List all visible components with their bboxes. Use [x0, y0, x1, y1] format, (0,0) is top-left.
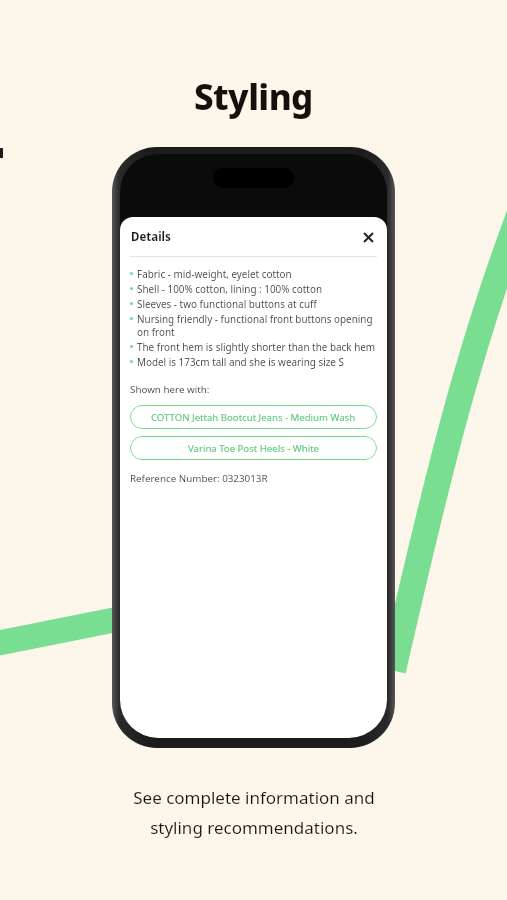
button[interactable]: Close [357, 226, 379, 248]
staticText: Model is 173cm tall and she is wearing s… [137, 355, 344, 368]
staticText: The front hem is slightly shorter than t… [137, 340, 376, 353]
staticText: Reference Number: 0323013R [130, 472, 268, 485]
staticText: styling recommendations. [150, 816, 358, 839]
staticText: Nursing friendly - functional front butt… [137, 312, 377, 338]
staticText: Shown here with: [130, 383, 210, 396]
staticText: Sleeves - two functional buttons at cuff [137, 297, 317, 310]
staticText: COTTON Jettah Bootcut Jeans - Medium Was… [151, 411, 356, 424]
button[interactable]: COTTON Jettah Bootcut Jeans - Medium Was… [130, 405, 377, 429]
staticText: Details [131, 229, 171, 245]
staticText: Fabric - mid-weight, eyelet cotton [137, 267, 292, 280]
staticText: See complete information and [133, 786, 375, 809]
staticText: Shell - 100% cotton, lining : 100% cotto… [137, 282, 322, 295]
button[interactable]: Varina Toe Post Heels - White [130, 436, 377, 460]
staticText: Styling [194, 73, 313, 121]
staticText: Varina Toe Post Heels - White [188, 442, 320, 455]
